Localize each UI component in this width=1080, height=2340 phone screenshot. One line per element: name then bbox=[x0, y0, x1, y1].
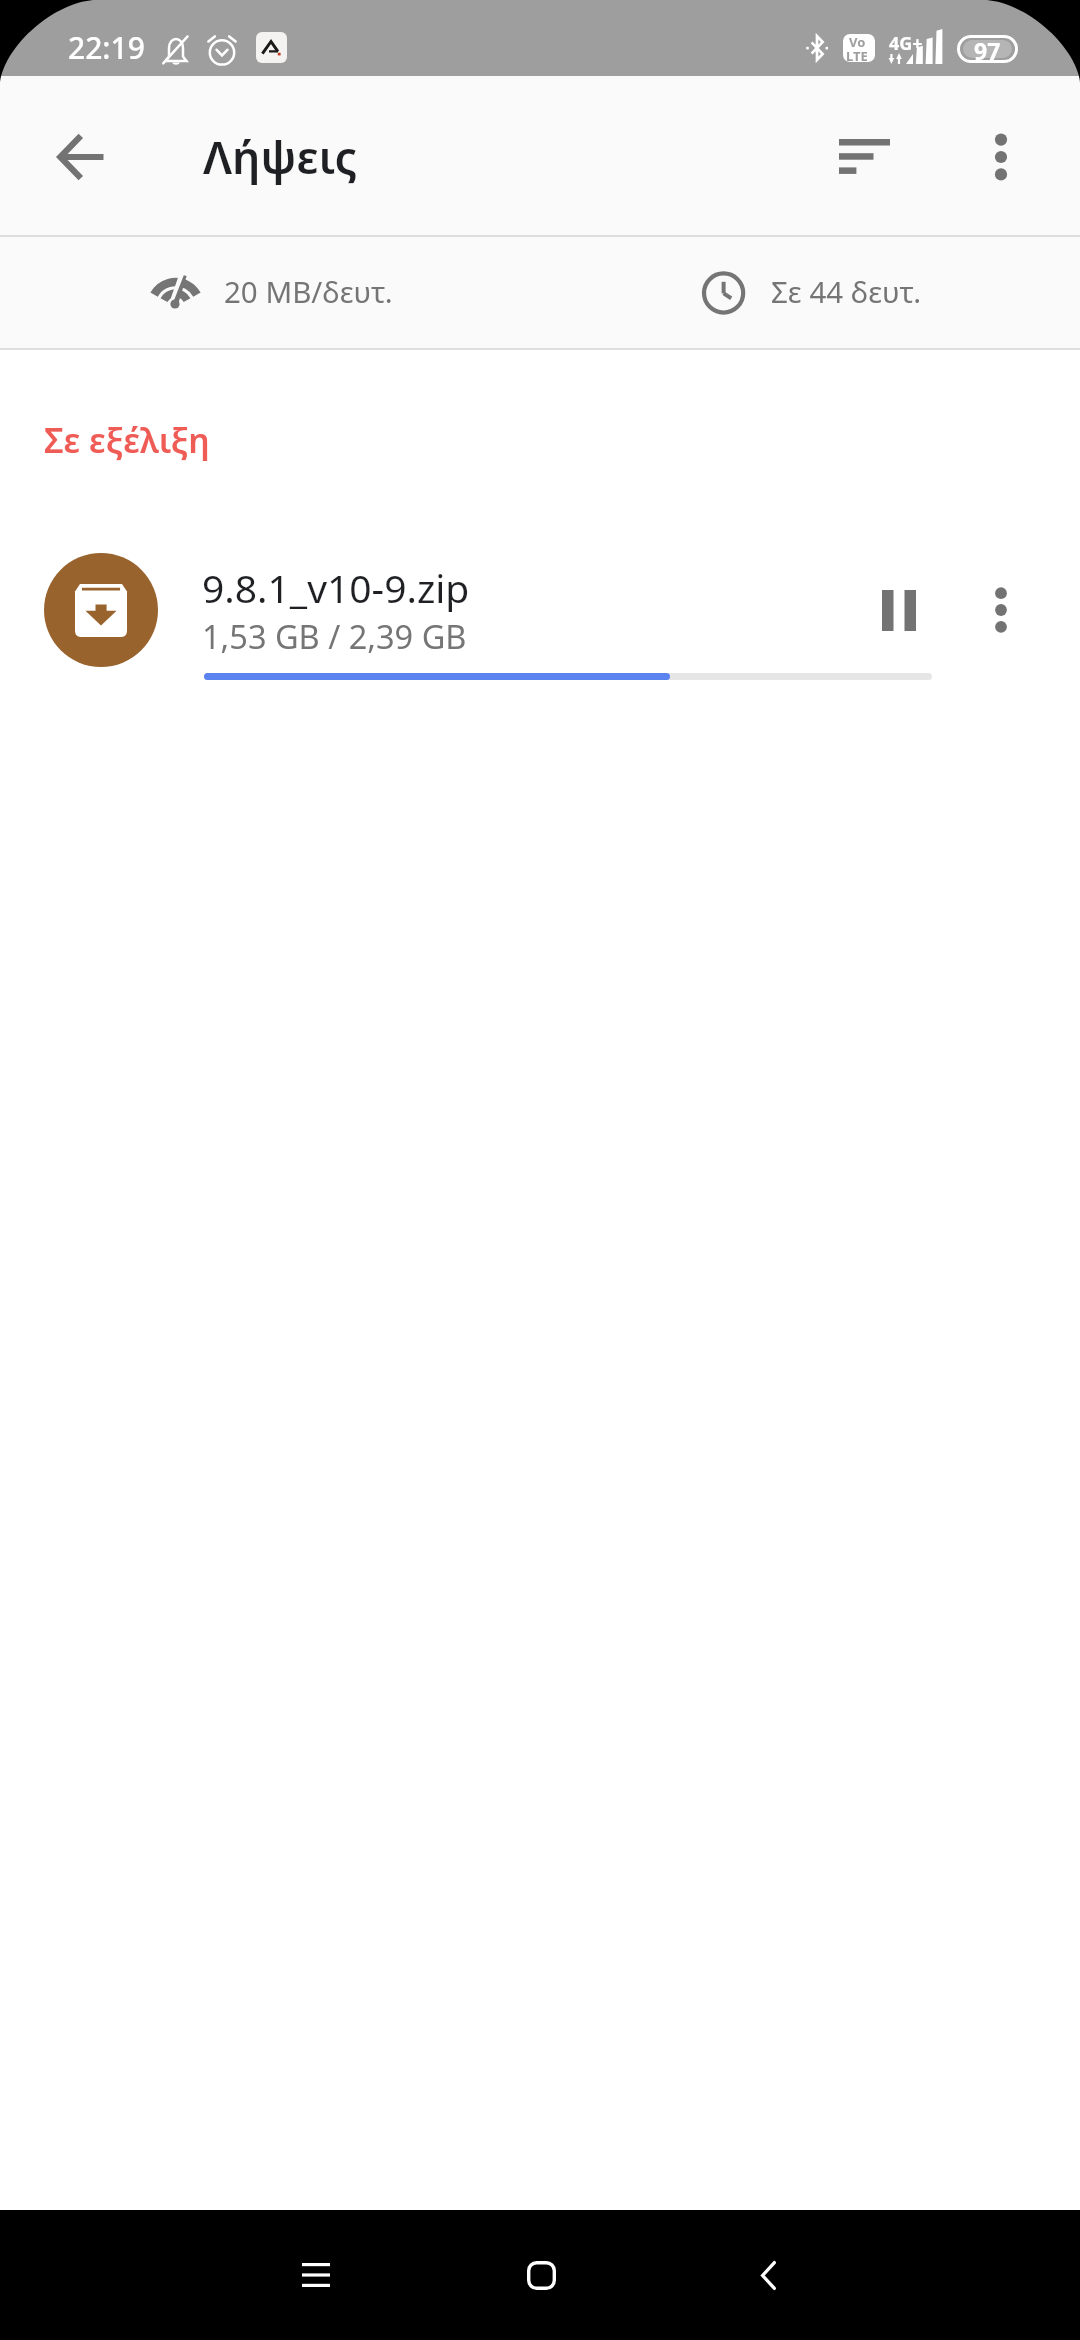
button[interactable]: More options bbox=[946, 76, 1056, 237]
staticText: 4G+ bbox=[889, 31, 923, 56]
button[interactable]: Recent apps bbox=[256, 2215, 376, 2335]
staticText: 1,53 GB / 2,39 GB bbox=[202, 614, 467, 658]
staticText: Σε 44 δευτ. bbox=[771, 271, 922, 311]
button[interactable]: Sort bbox=[810, 76, 920, 237]
button[interactable]: Home bbox=[481, 2215, 601, 2335]
button[interactable]: Back bbox=[708, 2215, 828, 2335]
staticText: Vo bbox=[849, 34, 866, 51]
staticText: Λήψεις bbox=[203, 126, 358, 187]
button[interactable]: 9.8.1_v10-9.zip bbox=[0, 530, 1080, 690]
staticText: LTE bbox=[846, 47, 868, 62]
button[interactable]: More options bbox=[946, 555, 1056, 665]
button[interactable]: Back bbox=[26, 76, 136, 237]
staticText: 97 bbox=[974, 35, 1001, 63]
staticText: Σε εξέλιξη bbox=[44, 417, 210, 463]
staticText: 22:19 bbox=[68, 27, 145, 68]
staticText: 9.8.1_v10-9.zip bbox=[202, 561, 470, 614]
button[interactable]: Pause bbox=[844, 555, 954, 665]
staticText: 20 MB/δευτ. bbox=[224, 271, 393, 311]
